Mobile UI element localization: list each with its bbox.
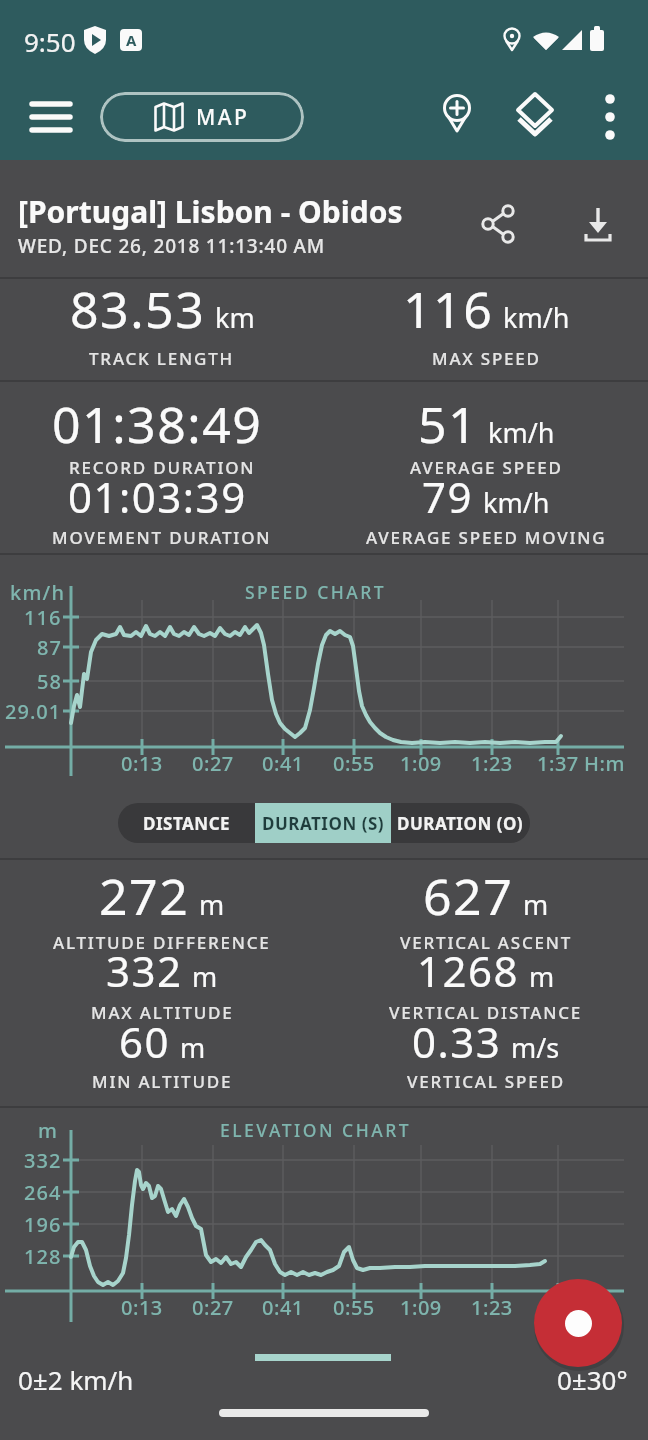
staticText: A bbox=[126, 30, 137, 50]
staticText: H:m bbox=[584, 750, 625, 776]
staticText: m bbox=[523, 886, 549, 923]
staticText: DURATION (S) bbox=[262, 812, 385, 835]
staticText: 116 bbox=[24, 604, 62, 630]
staticText: 627 bbox=[423, 862, 514, 922]
button[interactable] bbox=[534, 1279, 622, 1367]
staticText: 0±30° bbox=[557, 1362, 628, 1394]
button[interactable] bbox=[586, 85, 634, 133]
staticText: SPEED CHART bbox=[245, 580, 387, 604]
button[interactable] bbox=[503, 85, 567, 149]
button[interactable]: DURATION (O) bbox=[391, 803, 530, 843]
staticText: ELEVATION CHART bbox=[220, 1118, 412, 1142]
staticText: 9:50 bbox=[24, 24, 76, 58]
staticText: RECORD DURATION bbox=[69, 456, 256, 479]
staticText: 01:03:39 bbox=[68, 468, 247, 525]
staticText: 0:27 bbox=[192, 1294, 234, 1320]
button[interactable] bbox=[19, 85, 83, 149]
staticText: km/h bbox=[10, 579, 66, 605]
button[interactable]: MAP bbox=[100, 92, 304, 142]
staticText: 79 bbox=[422, 468, 474, 525]
staticText: WED, DEC 26, 2018 11:13:40 AM bbox=[18, 233, 326, 259]
staticText: VERTICAL ASCENT bbox=[400, 931, 573, 954]
staticText: VERTICAL SPEED bbox=[407, 1070, 565, 1093]
staticText: MAX ALTITUDE bbox=[91, 1001, 234, 1024]
staticText: 128 bbox=[24, 1243, 62, 1269]
staticText: TRACK LENGTH bbox=[89, 347, 235, 370]
staticText: 51 bbox=[418, 390, 479, 450]
staticText: MIN ALTITUDE bbox=[92, 1070, 233, 1093]
staticText: 1:23 bbox=[471, 750, 513, 776]
staticText: 196 bbox=[24, 1211, 62, 1237]
staticText: 0:41 bbox=[262, 1294, 304, 1320]
staticText: 1:09 bbox=[400, 1294, 442, 1320]
button[interactable] bbox=[425, 85, 489, 149]
staticText: 332 bbox=[24, 1147, 62, 1173]
staticText: 0:13 bbox=[121, 1294, 163, 1320]
staticText: 83.53 bbox=[70, 275, 206, 335]
staticText: m bbox=[38, 1117, 59, 1143]
staticText: AVERAGE SPEED MOVING bbox=[366, 526, 607, 549]
staticText: 0±2 km/h bbox=[18, 1362, 134, 1394]
staticText: 264 bbox=[24, 1179, 62, 1205]
staticText: 0:27 bbox=[192, 750, 234, 776]
staticText: MOVEMENT DURATION bbox=[52, 526, 272, 549]
staticText: 1:37 bbox=[537, 750, 579, 776]
staticText: 0:41 bbox=[262, 750, 304, 776]
staticText: km/h bbox=[483, 484, 550, 521]
staticText: 116 bbox=[403, 275, 494, 335]
staticText: 272 bbox=[99, 862, 190, 922]
staticText: 332 bbox=[106, 942, 183, 999]
button[interactable] bbox=[566, 192, 630, 256]
staticText: m bbox=[180, 1029, 206, 1066]
staticText: 0:55 bbox=[333, 750, 375, 776]
staticText: 0.33 bbox=[412, 1013, 502, 1070]
staticText: MAP bbox=[196, 103, 250, 132]
staticText: 60 bbox=[119, 1013, 171, 1070]
staticText: m bbox=[529, 958, 555, 995]
button[interactable] bbox=[466, 192, 530, 256]
staticText: km/h bbox=[503, 299, 570, 336]
staticText: 29.01 bbox=[5, 698, 62, 724]
staticText: m bbox=[192, 958, 218, 995]
button[interactable]: DISTANCE bbox=[118, 803, 255, 843]
staticText: m/s bbox=[511, 1029, 560, 1066]
staticText: [Portugal] Lisbon - Obidos bbox=[18, 191, 403, 232]
staticText: AVERAGE SPEED bbox=[410, 456, 563, 479]
staticText: 87 bbox=[37, 634, 62, 660]
staticText: DURATION (O) bbox=[397, 812, 524, 835]
staticText: 1:23 bbox=[471, 1294, 513, 1320]
staticText: km/h bbox=[488, 414, 555, 451]
staticText: 58 bbox=[37, 668, 62, 694]
staticText: 1268 bbox=[417, 942, 520, 999]
staticText: ALTITUDE DIFFERENCE bbox=[53, 931, 271, 954]
button[interactable]: DURATION (S) bbox=[255, 803, 391, 843]
staticText: MAX SPEED bbox=[432, 347, 541, 370]
staticText: m bbox=[199, 886, 225, 923]
staticText: 01:38:49 bbox=[52, 390, 263, 450]
staticText: DISTANCE bbox=[143, 812, 231, 835]
staticText: VERTICAL DISTANCE bbox=[389, 1001, 583, 1024]
staticText: km bbox=[215, 299, 255, 336]
staticText: 0:55 bbox=[333, 1294, 375, 1320]
staticText: 1:09 bbox=[400, 750, 442, 776]
staticText: 0:13 bbox=[121, 750, 163, 776]
